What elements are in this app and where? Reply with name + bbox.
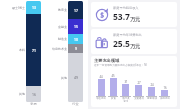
staticText: 16 xyxy=(32,92,36,97)
staticText: 饮食 xyxy=(111,97,116,100)
staticText: 31 xyxy=(124,80,128,84)
staticText: 行业 xyxy=(72,102,79,106)
staticText: 主要支出领域 xyxy=(94,58,120,63)
staticText: 53.7 xyxy=(113,11,130,23)
staticText: 其他 xyxy=(2,92,25,96)
staticText: 居住支出 xyxy=(96,97,106,100)
other: Income xyxy=(95,8,109,22)
staticText: 17 xyxy=(74,8,78,13)
staticText: 医疗及 学习 xyxy=(122,97,130,103)
staticText: 24 xyxy=(150,83,154,87)
staticText: 9 xyxy=(75,46,77,51)
staticText: 制造业 xyxy=(44,37,67,41)
staticText: 49 xyxy=(74,75,78,80)
button[interactable]: Income xyxy=(91,2,177,27)
staticText: 近年一定资增投力量的支出占家庭比(单位：%) xyxy=(94,63,174,67)
staticText: 本科 xyxy=(2,48,25,52)
staticText: 25.5 xyxy=(113,38,130,50)
other: Spending xyxy=(95,35,109,49)
button[interactable]: 13 xyxy=(26,1,41,102)
staticText: 家庭平均税后收入 xyxy=(113,6,139,10)
button[interactable]: Spending xyxy=(91,29,177,54)
staticText: 45 xyxy=(111,74,115,78)
staticText: 家庭平均年消费支出 xyxy=(113,33,142,37)
staticText: 13 xyxy=(32,5,36,10)
staticText: 万元 xyxy=(130,43,140,49)
staticText: 其他 xyxy=(44,76,67,80)
staticText: 硕士/博士 xyxy=(2,6,25,10)
staticText: 金融业 xyxy=(44,25,67,29)
staticText: 教育培训 xyxy=(147,97,157,100)
staticText: 交通通信 xyxy=(134,97,144,100)
staticText: 10 xyxy=(74,37,78,42)
staticText: 信息技术业 xyxy=(44,47,67,51)
staticText: 教育业 xyxy=(44,8,67,12)
staticText: 万元 xyxy=(130,16,140,22)
button[interactable]: 17 xyxy=(68,1,83,102)
staticText: 学历 xyxy=(30,102,37,106)
button[interactable]: 主要支出领域 xyxy=(91,56,177,107)
staticText: 27 xyxy=(137,81,141,85)
staticText: 44 xyxy=(99,75,103,79)
staticText: 休闲支出 xyxy=(160,97,170,100)
staticText: 16 xyxy=(163,86,167,90)
staticText: 15 xyxy=(74,24,78,29)
staticText: 71 xyxy=(32,48,36,53)
